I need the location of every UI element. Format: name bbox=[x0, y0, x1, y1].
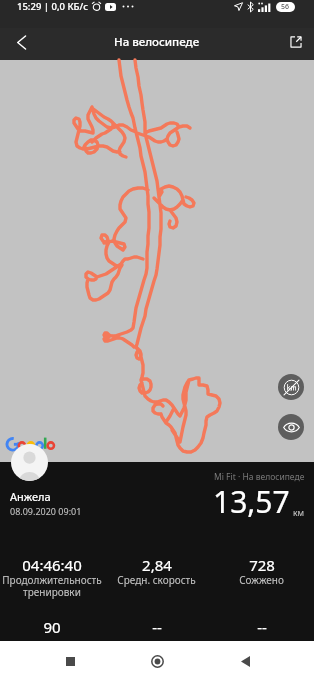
staticText: Mi Fit · На велосипеде bbox=[214, 471, 305, 483]
staticText: 56 bbox=[281, 2, 290, 12]
staticText: Продолжительность тренировки bbox=[1, 573, 103, 599]
button[interactable]: Open externally bbox=[280, 26, 312, 58]
staticText: Сожжено bbox=[239, 573, 284, 587]
button[interactable]: -- bbox=[104, 617, 209, 637]
staticText: 08.09.2020 09:01 bbox=[10, 505, 82, 517]
staticText: 13,57 bbox=[213, 481, 290, 522]
button[interactable]: Recent apps bbox=[52, 643, 88, 679]
staticText: 728 bbox=[249, 555, 275, 575]
staticText: км bbox=[293, 507, 305, 519]
staticText: 2,84 bbox=[142, 555, 172, 575]
button[interactable]: Back bbox=[5, 26, 37, 58]
staticText: Анжела bbox=[10, 489, 51, 504]
staticText: 04:46:40 bbox=[22, 555, 82, 575]
staticText: -- bbox=[152, 617, 162, 637]
button[interactable]: Hide kilometre markers bbox=[278, 374, 304, 400]
staticText: 90 bbox=[43, 617, 61, 637]
button[interactable]: 90 bbox=[0, 617, 104, 637]
button[interactable]: Back bbox=[227, 643, 263, 679]
staticText: 15:29 | 0,0 КБ/с bbox=[17, 0, 88, 13]
button[interactable]: 04:46:40 bbox=[0, 555, 104, 601]
button[interactable]: Home bbox=[139, 643, 175, 679]
button[interactable]: -- bbox=[209, 617, 314, 637]
staticText: -- bbox=[257, 617, 267, 637]
staticText: На велосипеде bbox=[114, 34, 200, 50]
button[interactable]: 728 bbox=[209, 555, 314, 589]
staticText: Средн. скорость bbox=[117, 573, 196, 587]
button[interactable]: Toggle route visibility bbox=[278, 414, 304, 440]
button[interactable]: 2,84 bbox=[104, 555, 209, 589]
